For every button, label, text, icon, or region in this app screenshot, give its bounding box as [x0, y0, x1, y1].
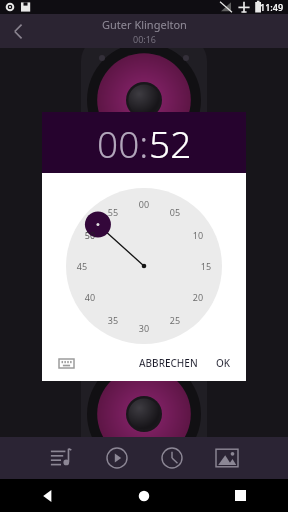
- button[interactable]: Wiedergabeliste: [42, 439, 80, 477]
- button[interactable]: ABBRECHEN: [134, 351, 203, 375]
- staticText: 00:: [97, 118, 149, 168]
- button[interactable]: 10: [189, 229, 207, 241]
- button[interactable]: 40: [81, 291, 99, 303]
- staticText: 11:49: [260, 1, 284, 13]
- button[interactable]: Zurück: [0, 14, 36, 48]
- button[interactable]: 25: [166, 314, 184, 326]
- button[interactable]: 55: [104, 206, 122, 218]
- button[interactable]: 30: [135, 322, 153, 334]
- staticText: ABBRECHEN: [139, 356, 198, 370]
- button[interactable]: Zurück: [0, 479, 96, 512]
- button[interactable]: 05: [166, 206, 184, 218]
- button[interactable]: 00: [135, 198, 153, 210]
- button[interactable]: OK: [211, 351, 236, 375]
- button[interactable]: 45: [73, 260, 91, 272]
- button[interactable]: 00:: [97, 118, 192, 168]
- button[interactable]: 35: [104, 314, 122, 326]
- staticText: Guter Klingelton: [102, 17, 187, 32]
- button[interactable]: 20: [189, 291, 207, 303]
- button[interactable]: 15: [197, 260, 215, 272]
- button[interactable]: Startbildschirm: [96, 479, 192, 512]
- button[interactable]: Tastatureingabe: [54, 351, 78, 375]
- button[interactable]: Timer: [153, 439, 191, 477]
- button[interactable]: 50: [81, 229, 99, 241]
- staticText: 52: [149, 118, 192, 168]
- staticText: 00:16: [133, 33, 157, 45]
- staticText: OK: [216, 356, 231, 370]
- button[interactable]: Abspielen: [98, 439, 136, 477]
- button[interactable]: Bilder: [208, 439, 246, 477]
- button[interactable]: Übersicht: [192, 479, 288, 512]
